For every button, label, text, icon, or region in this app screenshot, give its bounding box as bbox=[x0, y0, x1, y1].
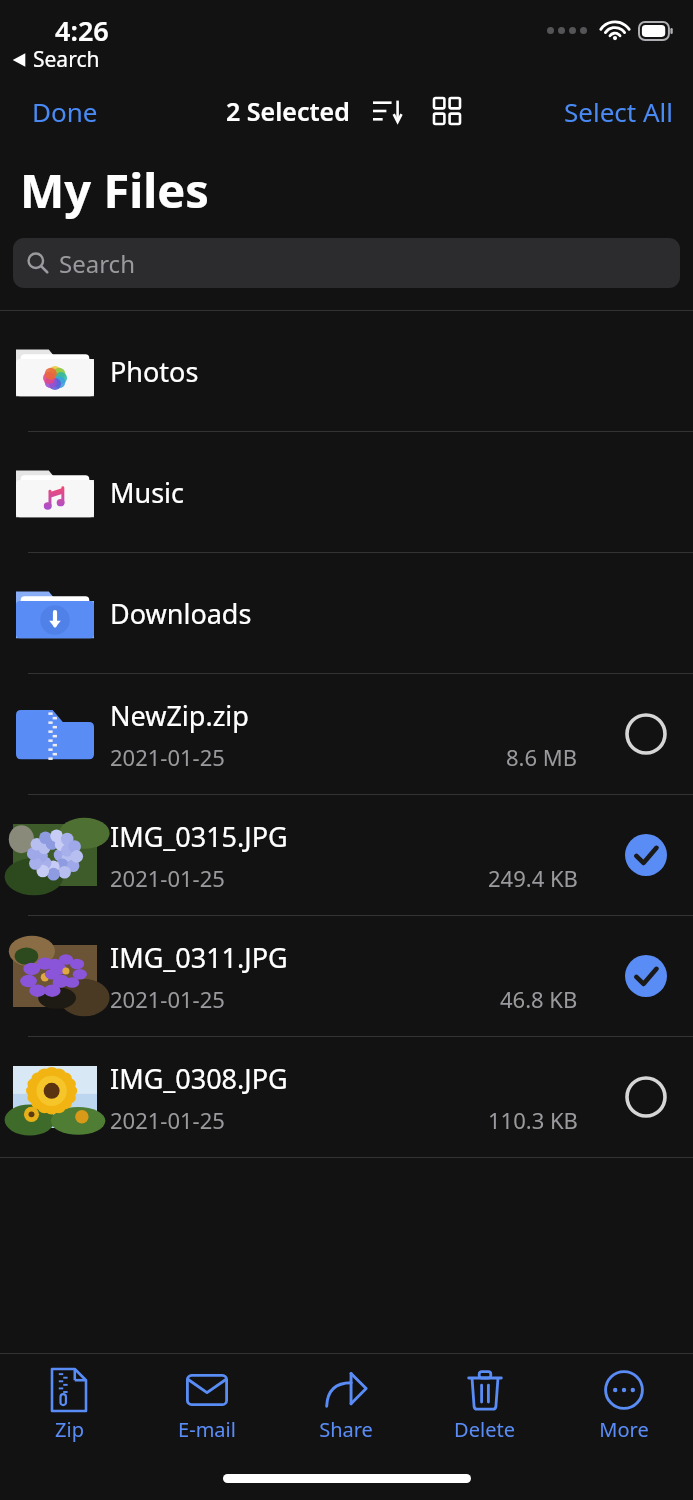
button[interactable]: IMG_0315.JPG bbox=[0, 795, 693, 915]
staticText: E-mail bbox=[178, 1416, 236, 1443]
staticText: 8.6 MB bbox=[506, 742, 578, 772]
staticText: Music bbox=[110, 474, 185, 511]
staticText: IMG_0315.JPG bbox=[110, 818, 288, 855]
button[interactable]: Grid view bbox=[426, 90, 468, 132]
staticText: Zip bbox=[55, 1416, 84, 1443]
staticText: 249.4 KB bbox=[488, 863, 578, 893]
button[interactable]: Search bbox=[13, 238, 680, 288]
button[interactable]: IMG_0311.JPG bbox=[0, 916, 693, 1036]
staticText: My Files bbox=[20, 158, 209, 222]
staticText: Done bbox=[32, 94, 98, 129]
staticText: 2 Selected bbox=[226, 94, 350, 128]
staticText: IMG_0308.JPG bbox=[110, 1060, 288, 1097]
staticText: Search bbox=[59, 247, 135, 280]
staticText: Downloads bbox=[110, 595, 252, 632]
button[interactable]: E-mail bbox=[138, 1354, 276, 1464]
button[interactable]: Done bbox=[0, 86, 130, 137]
staticText: 2021-01-25 bbox=[110, 863, 225, 893]
button[interactable]: Selected bbox=[619, 828, 673, 882]
staticText: 2021-01-25 bbox=[110, 984, 225, 1014]
staticText: NewZip.zip bbox=[110, 697, 249, 734]
staticText: 2021-01-25 bbox=[110, 1105, 225, 1135]
staticText: Search bbox=[33, 45, 100, 74]
staticText: More bbox=[599, 1416, 649, 1443]
staticText: IMG_0311.JPG bbox=[110, 939, 288, 976]
staticText: 46.8 KB bbox=[500, 984, 578, 1014]
staticText: Select All bbox=[564, 94, 673, 129]
staticText: Photos bbox=[110, 353, 199, 390]
button[interactable]: IMG_0308.JPG bbox=[0, 1037, 693, 1157]
staticText: 4:26 bbox=[55, 12, 109, 49]
button[interactable]: Not selected bbox=[619, 1070, 673, 1124]
button[interactable]: Zip bbox=[0, 1354, 138, 1464]
button[interactable]: Selected bbox=[619, 949, 673, 1003]
staticText: 2021-01-25 bbox=[110, 742, 225, 772]
staticText: Delete bbox=[454, 1416, 515, 1443]
button[interactable]: Photos bbox=[0, 311, 693, 431]
button[interactable]: Select All bbox=[544, 86, 693, 137]
staticText: 110.3 KB bbox=[488, 1105, 578, 1135]
button[interactable]: Not selected bbox=[619, 707, 673, 761]
button[interactable]: NewZip.zip bbox=[0, 674, 693, 794]
button[interactable]: Downloads bbox=[0, 553, 693, 673]
button[interactable]: Delete bbox=[415, 1354, 554, 1464]
button[interactable]: Share bbox=[276, 1354, 415, 1464]
button[interactable]: Sort bbox=[368, 91, 408, 131]
staticText: Share bbox=[319, 1416, 373, 1443]
button[interactable]: More bbox=[554, 1354, 693, 1464]
button[interactable]: Music bbox=[0, 432, 693, 552]
